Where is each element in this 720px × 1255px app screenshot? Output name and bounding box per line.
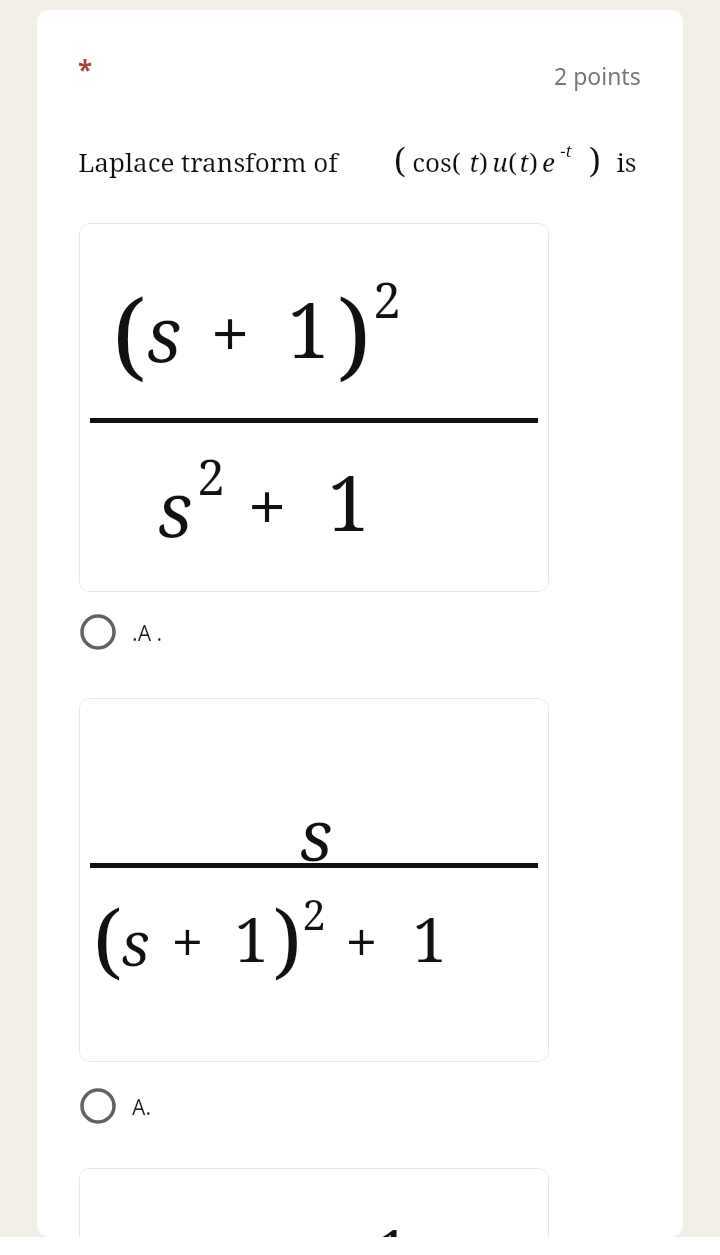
staticText: s xyxy=(121,900,150,984)
staticText: 1 xyxy=(234,896,269,980)
staticText: u xyxy=(492,144,508,179)
staticText: −t xyxy=(560,139,572,162)
staticText: ) xyxy=(273,882,302,992)
staticText: + xyxy=(171,901,204,980)
staticText: 1 xyxy=(412,896,447,980)
staticText: ( xyxy=(93,882,122,992)
staticText: s xyxy=(157,456,193,560)
staticText: 2 xyxy=(197,442,225,510)
staticText: s xyxy=(146,281,182,385)
staticText: cos( xyxy=(412,144,461,179)
staticText: Laplace transform of xyxy=(78,144,338,179)
staticText: A. xyxy=(132,1093,152,1122)
staticText: 2 xyxy=(373,265,401,333)
button[interactable]: s xyxy=(79,1168,549,1255)
staticText: t xyxy=(469,144,479,179)
staticText: e xyxy=(542,144,555,179)
staticText: 2 points xyxy=(554,60,641,91)
button[interactable]: ( xyxy=(79,223,549,592)
staticText: + xyxy=(247,457,287,552)
staticText: 1 xyxy=(327,450,370,554)
staticText: ) xyxy=(479,144,488,179)
staticText: is xyxy=(616,144,637,179)
staticText: + xyxy=(210,284,250,379)
button[interactable]: A. xyxy=(70,1078,370,1134)
staticText: ) xyxy=(337,267,371,387)
staticText: s xyxy=(299,784,333,882)
staticText: + xyxy=(345,901,378,980)
staticText: t xyxy=(519,144,529,179)
staticText: ( xyxy=(508,144,517,179)
staticText: ) xyxy=(589,137,601,183)
staticText: ( xyxy=(394,137,406,183)
button[interactable]: .A . xyxy=(70,604,370,660)
staticText: 2 xyxy=(302,885,326,942)
staticText: * xyxy=(78,52,93,87)
staticText: 1 xyxy=(375,1208,410,1255)
staticText: .A . xyxy=(132,619,163,648)
staticText: 1 xyxy=(287,277,330,381)
button[interactable]: s xyxy=(79,698,549,1062)
staticText: ) xyxy=(529,144,538,179)
staticText: ( xyxy=(112,267,146,387)
